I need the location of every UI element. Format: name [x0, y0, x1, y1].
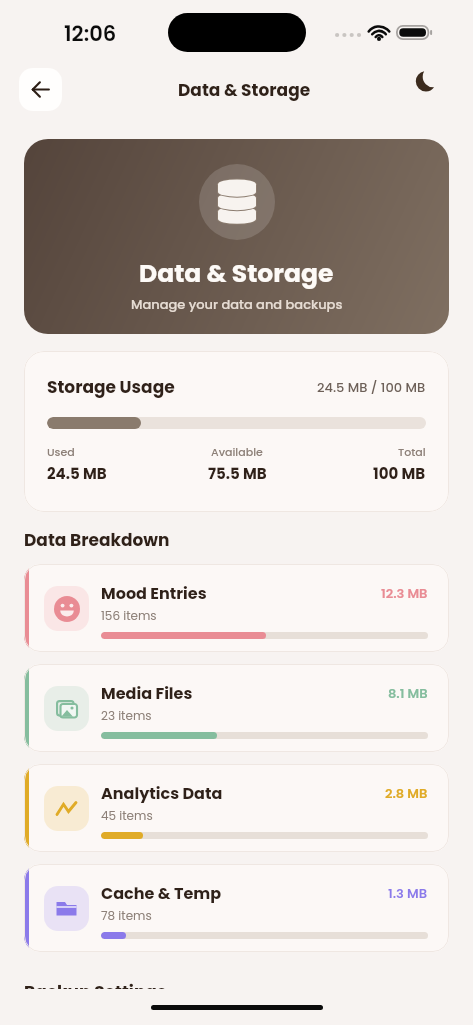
staticText: 23 items [101, 707, 152, 724]
staticText: Used [47, 444, 75, 459]
staticText: 156 items [101, 607, 157, 624]
button[interactable]: Mood Entries [24, 564, 449, 652]
staticText: Media Files [101, 682, 193, 704]
staticText: Backup Settings [24, 980, 167, 989]
staticText: Manage your data and backups [131, 295, 343, 313]
staticText: 100 MB [373, 463, 426, 484]
staticText: Data Breakdown [24, 528, 170, 552]
staticText: 78 items [101, 907, 152, 924]
staticText: Data & Storage [139, 256, 334, 291]
staticText: 8.1 MB [388, 684, 428, 702]
staticText: Analytics Data [101, 782, 223, 804]
staticText: Available [211, 444, 263, 459]
staticText: 2.8 MB [385, 784, 428, 802]
staticText: Total [398, 444, 426, 459]
staticText: 12:06 [64, 19, 117, 48]
button[interactable]: Back [19, 68, 62, 111]
staticText: 1.3 MB [388, 884, 428, 902]
staticText: Mood Entries [101, 582, 207, 604]
staticText: 24.5 MB [47, 463, 107, 484]
staticText: 12.3 MB [381, 584, 428, 602]
staticText: 45 items [101, 807, 153, 824]
button[interactable]: Analytics Data [24, 764, 449, 852]
button[interactable]: Toggle dark mode [414, 68, 458, 112]
button[interactable]: Cache & Temp [24, 864, 449, 952]
button[interactable]: Data & Storage [24, 139, 449, 334]
staticText: Storage Usage [47, 375, 175, 399]
button[interactable]: Storage Usage [24, 351, 449, 512]
button[interactable]: Media Files [24, 664, 449, 752]
staticText: Cache & Temp [101, 882, 222, 904]
staticText: 24.5 MB / 100 MB [317, 378, 426, 396]
staticText: Data & Storage [178, 78, 311, 102]
staticText: 75.5 MB [208, 463, 267, 484]
